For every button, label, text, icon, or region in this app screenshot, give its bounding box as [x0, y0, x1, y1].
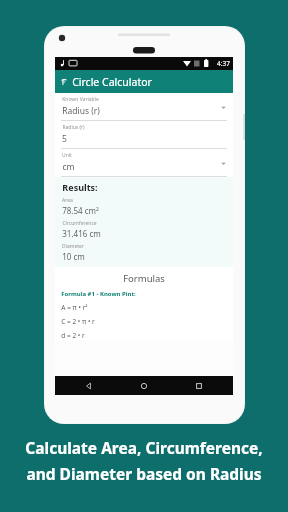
button[interactable]: Home — [138, 380, 150, 392]
staticText: Calculate Area, Circumference, — [25, 437, 263, 458]
button[interactable]: Back — [83, 380, 95, 392]
button[interactable]: App icon — [55, 70, 233, 93]
staticText: 5 — [62, 133, 67, 145]
staticText: Formulas — [123, 272, 165, 285]
staticText: and Diameter based on Radius — [26, 463, 262, 484]
staticText: 10 cm — [62, 251, 85, 262]
staticText: Formula #1 - Known Pint: — [61, 290, 136, 298]
button[interactable]: Known Variable — [55, 93, 233, 121]
staticText: Area — [62, 197, 73, 204]
staticText: 4:37 — [217, 59, 230, 68]
staticText: 31.416 cm — [62, 228, 101, 239]
staticText: Circle Calculator — [72, 75, 152, 89]
staticText: 78.54 cm² — [62, 205, 99, 216]
staticText: C = 2 • π • r — [61, 317, 95, 326]
staticText: d = 2 • r — [61, 331, 85, 340]
staticText: Unit — [62, 152, 72, 159]
staticText: Results: — [62, 181, 98, 193]
button[interactable]: Unit — [55, 149, 233, 177]
button[interactable]: Recents — [193, 380, 205, 392]
other: App icon — [60, 78, 68, 86]
staticText: cm — [62, 161, 75, 173]
staticText: Known Variable — [62, 96, 99, 103]
staticText: Radius (r) — [62, 105, 100, 117]
staticText: A = π • r² — [61, 303, 88, 312]
staticText: Diameter — [62, 243, 84, 250]
staticText: Circumference — [62, 220, 97, 227]
staticText: Radius (r) — [62, 124, 85, 131]
button[interactable]: Radius (r) — [55, 121, 233, 149]
